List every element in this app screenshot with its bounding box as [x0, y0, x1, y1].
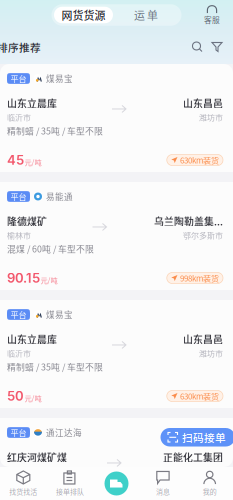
staticText: 平台	[10, 191, 26, 202]
staticText: 客服	[204, 14, 220, 25]
button[interactable]: 客服	[200, 4, 224, 26]
staticText: 平台	[10, 73, 26, 84]
button[interactable]: 运 单	[113, 7, 179, 23]
staticText: 我的	[203, 486, 217, 496]
staticText: 山东昌邑	[183, 96, 223, 110]
staticText: 山东立晨库	[7, 96, 57, 110]
staticText: 鄂尔多斯市	[183, 229, 223, 241]
button[interactable]: 发布	[93, 471, 140, 495]
button[interactable]: 扫码接单	[160, 428, 233, 446]
staticText: 630km装货	[180, 154, 219, 166]
staticText: 90.15	[7, 270, 40, 286]
staticText: 元/吨	[24, 393, 41, 403]
staticText: 潍坊市	[199, 111, 223, 123]
staticText: 通江达海	[46, 426, 82, 439]
staticText: 榆林市	[7, 229, 31, 241]
button[interactable]: 接单排队	[47, 470, 93, 496]
staticText: 山东立晨库	[7, 332, 57, 346]
staticText: 山东昌邑	[183, 332, 223, 346]
staticText: 潍坊市	[199, 347, 223, 359]
staticText: 元/吨	[24, 157, 41, 167]
staticText: 精制蜡 / 35吨 / 车型不限	[7, 124, 103, 137]
button[interactable]: 平台	[0, 300, 233, 408]
staticText: 45	[7, 152, 24, 168]
staticText: 消息	[156, 486, 170, 496]
staticText: 排序推荐	[0, 39, 41, 55]
button[interactable]: 平台	[0, 64, 233, 172]
staticText: 煤易宝	[46, 308, 73, 321]
staticText: 乌兰陶勒盖集...	[154, 214, 223, 228]
staticText: 临沂市	[7, 347, 31, 359]
staticText: 易能通	[46, 190, 73, 203]
button[interactable]: 排序推荐	[0, 39, 41, 55]
button[interactable]: 我的	[186, 470, 233, 496]
staticText: 临沂市	[7, 111, 31, 123]
staticText: 平台	[10, 427, 26, 438]
staticText: 混煤 / 60吨 / 车型不限	[7, 242, 94, 255]
button[interactable]: 平台	[0, 418, 233, 500]
staticText: 运 单	[134, 7, 158, 23]
staticText: 998km装货	[180, 272, 219, 284]
staticText: 接单排队	[56, 486, 84, 496]
button[interactable]: 网货货源	[54, 7, 113, 23]
button[interactable]: 找货找活	[0, 470, 47, 496]
staticText: 50	[7, 388, 24, 404]
button[interactable]: 消息	[140, 470, 186, 496]
staticText: 鄂尔多斯市	[7, 465, 47, 477]
staticText: 榆林市	[199, 465, 223, 477]
staticText: 正能化工集团	[163, 450, 223, 464]
staticText: 找货找活	[9, 486, 37, 496]
button[interactable]: 搜索	[192, 41, 203, 52]
staticText: 网货货源	[61, 7, 105, 23]
staticText: 红庆河煤矿煤	[7, 450, 67, 464]
staticText: 块煤 / 40吨 / 车型不限	[7, 478, 94, 491]
staticText: 隆德煤矿	[7, 214, 47, 228]
button[interactable]: 平台	[0, 182, 233, 290]
staticText: 630km装货	[180, 390, 219, 402]
staticText: 煤易宝	[46, 72, 73, 85]
button[interactable]: 筛选	[212, 41, 223, 52]
staticText: 元/吨	[40, 275, 57, 285]
staticText: 精制蜡 / 35吨 / 车型不限	[7, 360, 103, 373]
staticText: 平台	[10, 309, 26, 320]
staticText: 扫码接单	[182, 429, 226, 445]
